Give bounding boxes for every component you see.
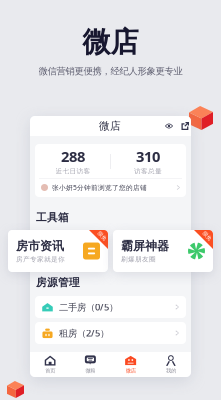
staticText: 微店 — [99, 119, 121, 132]
staticText: 张小妍5分钟前浏览了您的店铺 — [52, 183, 147, 192]
staticText: 房源管理 — [36, 276, 80, 289]
staticText: 首页 — [45, 367, 55, 374]
staticText: 微店 — [82, 25, 138, 59]
staticText: 微店 — [126, 367, 136, 374]
button[interactable]: 我的 — [151, 352, 191, 377]
staticText: 房产专家就是你 — [16, 255, 65, 263]
staticText: 限免 — [97, 233, 107, 239]
button[interactable]: Preview — [161, 116, 177, 136]
staticText: 微聊 — [85, 367, 95, 374]
button[interactable]: 首页 — [30, 352, 70, 377]
button[interactable]: Share — [177, 116, 193, 136]
staticText: 刷爆朋友圈 — [121, 255, 156, 263]
button[interactable]: 张小妍5分钟前浏览了您的店铺 — [35, 178, 186, 197]
staticText: 租房（2/5） — [59, 327, 109, 339]
button[interactable]: 微店 — [110, 352, 151, 377]
staticText: 微信营销更便携，经纪人形象更专业 — [38, 65, 182, 77]
button[interactable]: 霸屏神器 — [113, 230, 213, 272]
button[interactable]: 房市资讯 — [8, 230, 108, 272]
staticText: 工具箱 — [36, 211, 69, 224]
button[interactable]: 租房（2/5） — [35, 322, 186, 344]
staticText: 我的 — [166, 367, 176, 374]
staticText: 访客总量 — [134, 167, 162, 175]
staticText: 二手房（0/5） — [59, 301, 118, 313]
staticText: 近七日访客 — [55, 167, 90, 175]
button[interactable]: 二手房（0/5） — [35, 296, 186, 318]
button[interactable]: 微聊 — [70, 352, 110, 377]
staticText: 霸屏神器 — [121, 238, 169, 253]
staticText: 房市资讯 — [16, 238, 64, 253]
staticText: 310 — [136, 147, 160, 166]
staticText: 限免 — [202, 233, 212, 239]
staticText: 288 — [61, 147, 85, 166]
